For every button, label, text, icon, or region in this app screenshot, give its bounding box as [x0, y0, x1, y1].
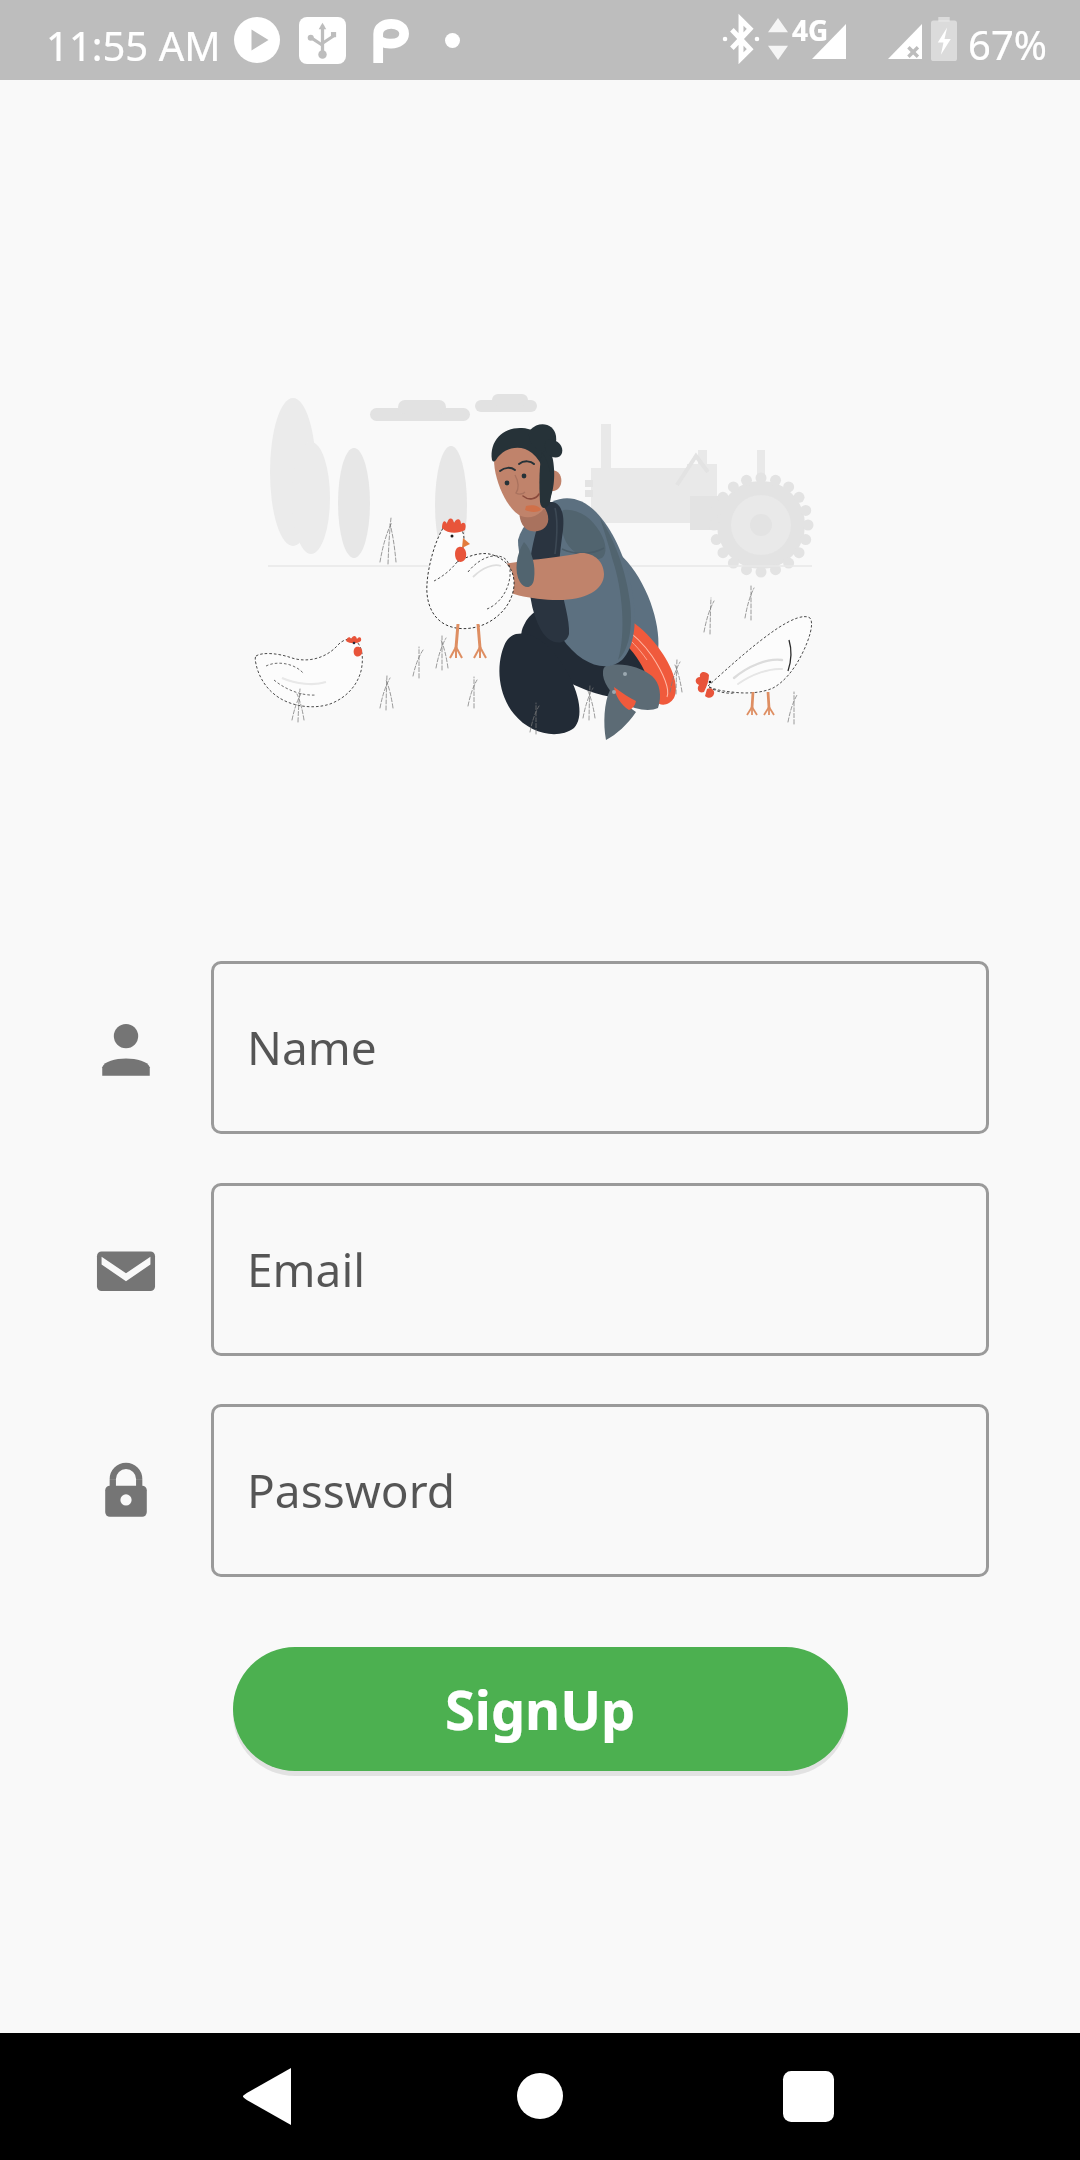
staticText: 4G — [792, 11, 829, 49]
staticText: SignUp — [445, 1672, 636, 1746]
button[interactable]: Password — [211, 1404, 989, 1577]
button[interactable]: Email — [211, 1183, 989, 1356]
staticText: Name — [247, 1016, 377, 1079]
staticText: Email — [247, 1238, 366, 1301]
button[interactable]: SignUp — [233, 1647, 848, 1771]
button[interactable]: Home — [480, 2041, 600, 2151]
staticText: Password — [247, 1459, 456, 1522]
staticText: 11:55 AM — [46, 18, 221, 72]
button[interactable]: Back — [207, 2041, 327, 2151]
button[interactable]: Recent apps — [748, 2041, 868, 2151]
button[interactable]: Name — [211, 961, 989, 1134]
staticText: 67% — [968, 17, 1047, 71]
